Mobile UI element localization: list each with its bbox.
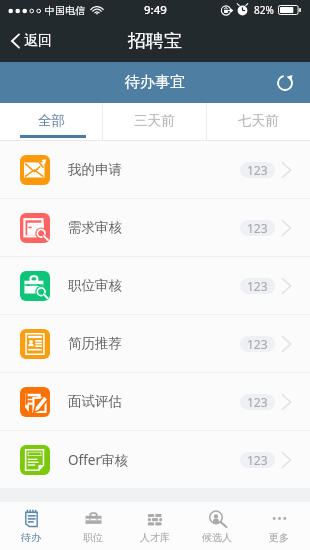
staticText: Offer审核 (68, 451, 129, 469)
staticText: 全部 (38, 112, 65, 129)
staticText: 123 (247, 452, 268, 468)
button[interactable]: 人才库 (124, 502, 186, 550)
staticText: 123 (247, 220, 268, 236)
staticText: 七天前 (238, 112, 279, 129)
staticText: 中国电信 (45, 4, 85, 17)
staticText: 123 (247, 162, 268, 178)
staticText: 待办 (21, 531, 41, 544)
staticText: 三天前 (134, 112, 175, 129)
button[interactable]: 需求审核 (0, 199, 310, 256)
staticText: 123 (247, 336, 268, 352)
staticText: 9:49 (144, 2, 167, 18)
button[interactable]: 简历推荐 (0, 315, 310, 372)
staticText: 123 (247, 278, 268, 294)
button[interactable]: 待办 (0, 502, 62, 550)
staticText: 职位审核 (68, 277, 122, 294)
button[interactable]: 七天前 (207, 103, 310, 141)
button[interactable]: 三天前 (103, 103, 206, 141)
staticText: 82% (254, 3, 274, 17)
staticText: 简历推荐 (68, 335, 122, 352)
staticText: 待办事宜 (125, 73, 185, 92)
button[interactable]: 返回 (0, 26, 60, 56)
staticText: 候选人 (202, 531, 232, 544)
staticText: 职位 (83, 531, 103, 544)
staticText: 我的申请 (68, 161, 122, 178)
button[interactable]: 全部 (0, 103, 102, 141)
button[interactable]: Refresh (260, 64, 310, 102)
staticText: 面试评估 (68, 393, 122, 410)
staticText: 返回 (24, 32, 52, 50)
staticText: 人才库 (140, 531, 170, 544)
staticText: 123 (247, 394, 268, 410)
staticText: 需求审核 (68, 219, 122, 236)
button[interactable]: 职位审核 (0, 257, 310, 314)
staticText: 更多 (269, 531, 289, 544)
button[interactable]: 更多 (248, 502, 310, 550)
button[interactable]: 职位 (62, 502, 124, 550)
button[interactable]: 面试评估 (0, 373, 310, 430)
button[interactable]: Offer审核 (0, 431, 310, 488)
button[interactable]: 候选人 (186, 502, 248, 550)
button[interactable]: 我的申请 (0, 141, 310, 198)
staticText: 招聘宝 (128, 30, 182, 53)
